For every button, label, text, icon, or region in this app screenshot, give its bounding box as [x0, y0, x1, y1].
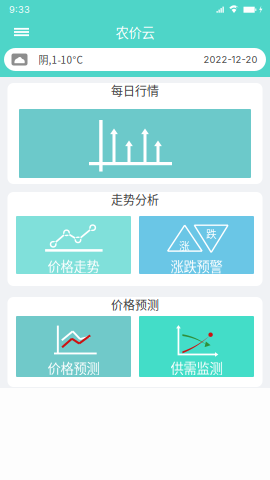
staticText: 价格走势: [47, 256, 99, 275]
staticText: 涨跌预警: [170, 256, 222, 275]
staticText: 跌: [206, 226, 217, 241]
button[interactable]: 价格预测: [16, 316, 131, 377]
button[interactable]: 涨: [139, 216, 254, 274]
staticText: 农价云: [115, 22, 154, 42]
staticText: 供需监测: [170, 358, 222, 377]
staticText: 涨: [179, 238, 190, 253]
staticText: 价格预测: [47, 358, 99, 377]
staticText: 每日行情: [111, 82, 159, 99]
button[interactable]: 菜单: [8, 23, 35, 41]
staticText: 阴,1-10°C: [38, 52, 82, 67]
staticText: 9:33: [9, 4, 30, 15]
button[interactable]: [16, 109, 254, 178]
button[interactable]: 价格走势: [16, 216, 131, 274]
button[interactable]: 供需监测: [139, 316, 254, 377]
staticText: 价格预测: [111, 296, 159, 313]
staticText: 走势分析: [111, 191, 159, 208]
staticText: 2022-12-20: [203, 54, 257, 65]
